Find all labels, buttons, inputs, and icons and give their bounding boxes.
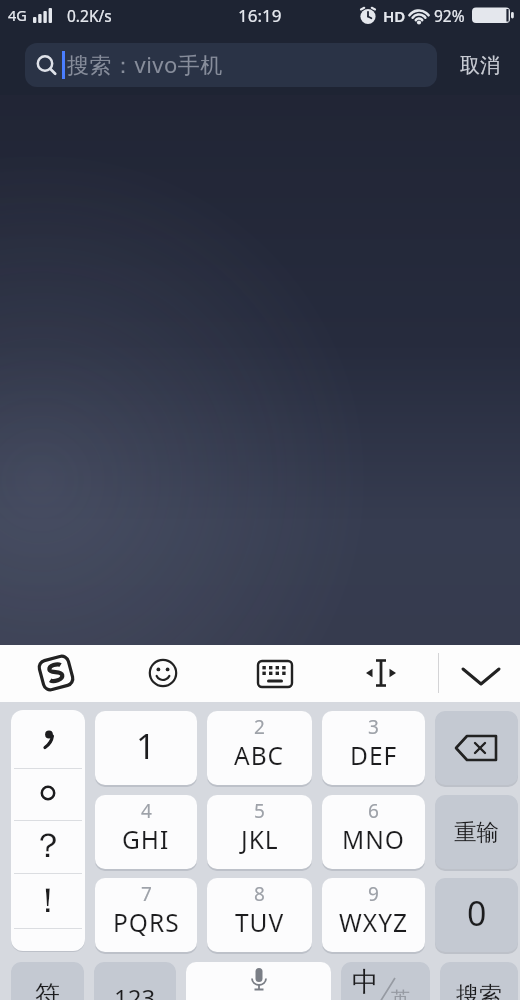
staticText: 16:19 — [238, 4, 282, 26]
button[interactable] — [435, 711, 518, 785]
staticText: 符 — [35, 979, 60, 1000]
button[interactable]: 搜索：vivo手机 — [25, 43, 437, 87]
button[interactable] — [458, 655, 504, 691]
button[interactable]: 取消 — [445, 43, 515, 87]
button[interactable]: 6 — [322, 795, 425, 869]
button[interactable] — [256, 655, 294, 691]
button[interactable]: 4 — [95, 795, 197, 869]
staticText: PQRS — [113, 906, 180, 939]
staticText: MNO — [342, 823, 405, 856]
staticText: 7 — [141, 881, 152, 907]
staticText: 9 — [368, 881, 379, 907]
staticText: 92% — [434, 5, 465, 25]
staticText: ？ — [31, 824, 65, 867]
staticText: 2 — [254, 714, 265, 740]
staticText: 搜索 — [456, 981, 502, 1000]
button[interactable] — [11, 820, 85, 873]
button[interactable] — [145, 655, 181, 691]
staticText: ABC — [234, 739, 285, 772]
staticText: 3 — [368, 714, 379, 740]
staticText: 重输 — [454, 818, 499, 846]
staticText: HD — [383, 6, 406, 26]
staticText: 1 — [136, 723, 156, 769]
staticText: JKL — [241, 823, 279, 856]
staticText: TUV — [235, 906, 285, 939]
staticText: DEF — [350, 739, 398, 772]
button[interactable]: 符 — [11, 962, 84, 1000]
button[interactable]: 8 — [207, 878, 312, 952]
button[interactable]: 0 — [435, 878, 518, 952]
staticText: ！ — [31, 879, 65, 922]
button[interactable]: 3 — [322, 711, 425, 785]
button[interactable]: 5 — [207, 795, 312, 869]
staticText: 8 — [254, 881, 265, 907]
staticText: 6 — [368, 798, 379, 824]
staticText: 4 — [141, 798, 152, 824]
staticText: 中 — [352, 965, 379, 999]
button[interactable] — [11, 768, 85, 820]
button[interactable]: 123 — [94, 962, 176, 1000]
button[interactable] — [11, 873, 85, 928]
button[interactable]: 2 — [207, 711, 312, 785]
button[interactable]: 重输 — [435, 795, 518, 869]
staticText: 123 — [114, 981, 156, 1000]
button[interactable] — [362, 655, 400, 691]
button[interactable]: 7 — [95, 878, 197, 952]
staticText: 0.2K/s — [67, 5, 112, 26]
button[interactable] — [38, 655, 74, 691]
button[interactable]: 搜索 — [440, 962, 518, 1000]
button[interactable]: 1 — [95, 711, 197, 785]
staticText: WXYZ — [339, 906, 409, 939]
button[interactable]: 9 — [322, 878, 425, 952]
staticText: 搜索：vivo手机 — [67, 49, 223, 79]
staticText: 取消 — [460, 53, 500, 78]
button[interactable] — [11, 710, 85, 768]
staticText: 5 — [254, 798, 265, 824]
staticText: 0 — [467, 890, 487, 936]
button[interactable]: 中 — [341, 962, 430, 1000]
staticText: 4G — [8, 5, 27, 25]
staticText: GHI — [122, 823, 170, 856]
button[interactable] — [186, 962, 331, 1000]
staticText: 英 — [391, 987, 410, 1000]
